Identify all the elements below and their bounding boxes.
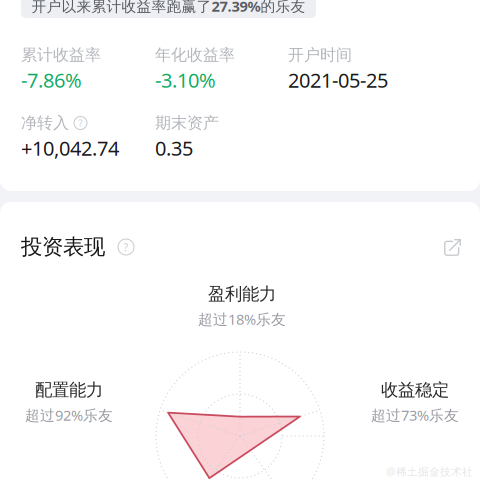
staticText: -7.86% bbox=[21, 67, 82, 93]
button[interactable]: Share bbox=[444, 238, 462, 256]
staticText: ? bbox=[78, 117, 82, 129]
staticText: 收益稳定 bbox=[381, 379, 449, 401]
staticText: 开户时间 bbox=[288, 45, 352, 65]
staticText: 盈利能力 bbox=[208, 283, 276, 305]
staticText: 期末资产 bbox=[155, 113, 219, 133]
staticText: @稀土掘金技术社区 bbox=[386, 464, 473, 480]
staticText: 超过73%乐友 bbox=[371, 405, 459, 425]
staticText: 投资表现 bbox=[21, 234, 105, 260]
staticText: 0.35 bbox=[155, 135, 193, 161]
staticText: 2021-05-25 bbox=[288, 67, 388, 93]
staticText: 年化收益率 bbox=[155, 45, 235, 65]
staticText: 超过92%乐友 bbox=[25, 405, 113, 425]
staticText: 净转入 bbox=[21, 113, 69, 133]
staticText: 开户以来累计收益率跑赢了27.39%的乐友 bbox=[31, 0, 305, 16]
staticText: -3.10% bbox=[155, 67, 216, 93]
staticText: 配置能力 bbox=[35, 379, 103, 401]
staticText: 累计收益率 bbox=[21, 45, 101, 65]
staticText: 超过18%乐友 bbox=[198, 309, 286, 329]
staticText: +10,042.74 bbox=[21, 135, 119, 161]
staticText: ? bbox=[123, 240, 128, 254]
